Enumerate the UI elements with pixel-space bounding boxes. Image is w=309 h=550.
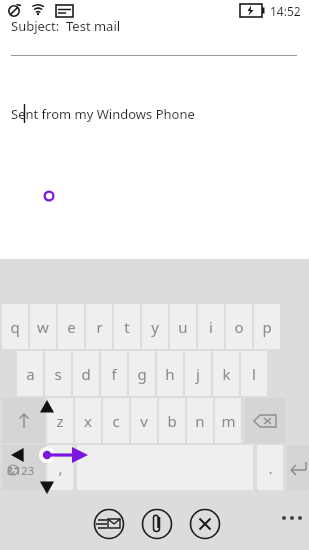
staticText: t: [124, 317, 130, 337]
staticText: o: [234, 317, 244, 337]
button[interactable]: &123: [2, 445, 45, 490]
staticText: r: [96, 317, 103, 337]
staticText: v: [140, 411, 148, 431]
button[interactable]: h: [157, 351, 183, 396]
staticText: d: [81, 364, 91, 384]
staticText: f: [111, 364, 117, 384]
staticText: Sent from my Windows Phone: [11, 105, 195, 123]
staticText: l: [252, 364, 256, 384]
staticText: j: [196, 364, 200, 384]
button[interactable]: t: [114, 304, 140, 349]
staticText: u: [178, 317, 188, 337]
button[interactable]: Send: [93, 508, 125, 540]
button[interactable]: m: [215, 398, 241, 443]
button[interactable]: Attach: [141, 508, 173, 540]
button[interactable]: v: [131, 398, 157, 443]
button[interactable]: Close: [189, 508, 221, 540]
staticText: z: [56, 411, 64, 431]
staticText: w: [37, 317, 49, 337]
button[interactable]: Sent from my Windows Phone: [0, 0, 309, 259]
staticText: ,: [58, 458, 63, 478]
button[interactable]: l: [241, 351, 267, 396]
button[interactable]: r: [86, 304, 112, 349]
staticText: a: [26, 364, 35, 384]
staticText: k: [222, 364, 231, 384]
staticText: b: [167, 411, 177, 431]
button[interactable]: j: [185, 351, 211, 396]
button[interactable]: x: [75, 398, 101, 443]
button[interactable]: Shift: [2, 398, 45, 443]
button[interactable]: w: [30, 304, 56, 349]
button[interactable]: n: [187, 398, 213, 443]
staticText: h: [165, 364, 175, 384]
button[interactable]: More options: [278, 506, 306, 534]
button[interactable]: d: [73, 351, 99, 396]
button[interactable]: Backspace: [245, 398, 285, 443]
staticText: m: [221, 411, 236, 431]
staticText: g: [137, 364, 147, 384]
staticText: e: [67, 317, 76, 337]
button[interactable]: s: [45, 351, 71, 396]
button[interactable]: k: [213, 351, 239, 396]
button[interactable]: c: [103, 398, 129, 443]
button[interactable]: .: [257, 445, 283, 490]
staticText: p: [262, 317, 272, 337]
button[interactable]: f: [101, 351, 127, 396]
button[interactable]: b: [159, 398, 185, 443]
button[interactable]: a: [17, 351, 43, 396]
button[interactable]: ,: [47, 445, 73, 490]
button[interactable]: g: [129, 351, 155, 396]
staticText: &123: [7, 463, 34, 478]
button[interactable]: [77, 445, 253, 490]
staticText: i: [209, 317, 213, 337]
button[interactable]: y: [142, 304, 168, 349]
button[interactable]: o: [226, 304, 252, 349]
button[interactable]: q: [2, 304, 28, 349]
button[interactable]: z: [47, 398, 73, 443]
staticText: .: [268, 458, 273, 478]
button[interactable]: i: [198, 304, 224, 349]
button[interactable]: e: [58, 304, 84, 349]
staticText: q: [10, 317, 20, 337]
staticText: s: [54, 364, 62, 384]
staticText: 14:52: [270, 3, 301, 19]
button[interactable]: Enter: [287, 445, 309, 490]
button[interactable]: p: [254, 304, 280, 349]
staticText: Subject:: [11, 17, 60, 35]
button[interactable]: Subject:: [0, 0, 309, 58]
staticText: n: [195, 411, 205, 431]
staticText: c: [112, 411, 120, 431]
button[interactable]: u: [170, 304, 196, 349]
staticText: x: [84, 411, 92, 431]
staticText: Test mail: [66, 17, 121, 35]
staticText: y: [151, 317, 159, 337]
